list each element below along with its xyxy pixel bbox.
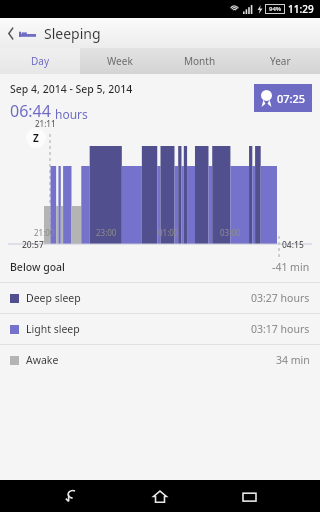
staticText: Light sleep [26,322,80,336]
button[interactable]: Recent apps [232,480,266,512]
staticText: Week [107,54,133,68]
button[interactable]: 07:25 [254,84,312,112]
staticText: 06:44 [10,100,51,122]
staticText: Year [270,54,291,68]
button[interactable]: Year [240,48,320,74]
staticText: 01:00 [158,227,179,238]
staticText: 03:17 hours [251,322,310,336]
staticText: Below goal [10,260,65,274]
staticText: Sep 4, 2014 - Sep 5, 2014 [10,82,133,96]
staticText: 21:11 [35,118,56,129]
staticText: 11:29 [288,2,314,16]
staticText: 23:00 [96,227,117,238]
button[interactable]: Day [0,48,80,74]
staticText: Deep sleep [26,291,81,305]
button[interactable]: Week [80,48,160,74]
staticText: 94% [269,5,282,13]
button[interactable]: Below goal [0,252,320,282]
staticText: -41 min [272,260,310,274]
button[interactable]: Deep sleep [0,283,320,313]
staticText: Sleeping [44,24,101,43]
button[interactable]: Month [160,48,240,74]
staticText: Awake [26,353,59,367]
staticText: Z [33,131,39,145]
button[interactable]: Back [0,18,44,48]
staticText: hours [55,106,88,122]
staticText: 07:25 [277,91,306,106]
staticText: 20:57 [22,239,44,251]
staticText: 04:15 [282,239,304,251]
button[interactable]: Awake [0,345,320,375]
staticText: Month [184,54,216,68]
button[interactable]: Home [143,480,177,512]
staticText: 03:00 [220,227,241,238]
button[interactable]: Back [55,480,89,512]
staticText: 21:00 [34,227,55,238]
staticText: 03:27 hours [251,291,310,305]
staticText: Day [31,54,50,68]
button[interactable]: Light sleep [0,314,320,344]
staticText: 34 min [276,353,310,367]
